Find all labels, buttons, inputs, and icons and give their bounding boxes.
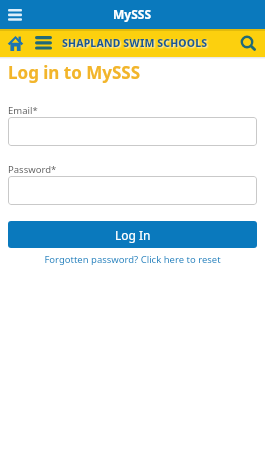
button[interactable]: [8, 176, 257, 205]
staticText: SHAPLAND SWIM SCHOOLS: [62, 36, 208, 50]
staticText: Log in to MySSS: [8, 61, 141, 84]
button[interactable]: [0, 29, 30, 57]
staticText: Password*: [8, 163, 57, 176]
button[interactable]: [30, 29, 56, 57]
button[interactable]: [233, 29, 263, 57]
button[interactable]: Forgotten password? Click here to reset: [8, 253, 257, 266]
staticText: MySSS: [113, 6, 152, 22]
button[interactable]: [6, 6, 24, 23]
button[interactable]: [8, 117, 257, 146]
button[interactable]: Log In: [8, 221, 257, 248]
staticText: Log In: [115, 227, 151, 243]
staticText: Email*: [8, 104, 38, 117]
